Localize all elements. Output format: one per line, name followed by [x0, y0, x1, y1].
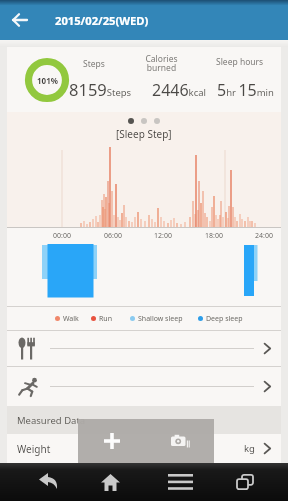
- staticText: Run: [99, 314, 113, 324]
- staticText: 8159Steps: [69, 78, 132, 100]
- button[interactable]: [7, 367, 281, 406]
- staticText: 101%: [37, 75, 58, 86]
- staticText: Sleep hours: [216, 56, 264, 68]
- staticText: Deep sleep: [206, 314, 243, 324]
- button[interactable]: [160, 463, 200, 501]
- staticText: Calories burned: [145, 53, 178, 74]
- staticText: Measured Data: [17, 414, 86, 427]
- button[interactable]: Weight: [7, 434, 281, 463]
- staticText: 2446kcal: [152, 79, 207, 101]
- button[interactable]: [0, 0, 40, 40]
- staticText: kg: [244, 442, 255, 455]
- button[interactable]: [90, 463, 130, 501]
- staticText: 12:00: [154, 231, 172, 241]
- button[interactable]: [146, 419, 214, 463]
- staticText: Weight: [17, 442, 51, 456]
- staticText: Steps: [83, 58, 105, 70]
- staticText: 06:00: [104, 231, 122, 241]
- staticText: Shallow sleep: [138, 314, 183, 324]
- staticText: [Sleep Step]: [116, 127, 172, 141]
- button[interactable]: [225, 463, 265, 501]
- button[interactable]: [7, 331, 281, 366]
- staticText: 00:00: [53, 231, 71, 241]
- button[interactable]: [28, 463, 68, 501]
- staticText: Walk: [63, 314, 79, 324]
- staticText: 24:00: [255, 231, 273, 241]
- staticText: 18:00: [205, 231, 223, 241]
- staticText: 2015/02/25(WED): [55, 13, 149, 28]
- staticText: 5hr 15min: [217, 79, 274, 101]
- button[interactable]: [78, 419, 146, 463]
